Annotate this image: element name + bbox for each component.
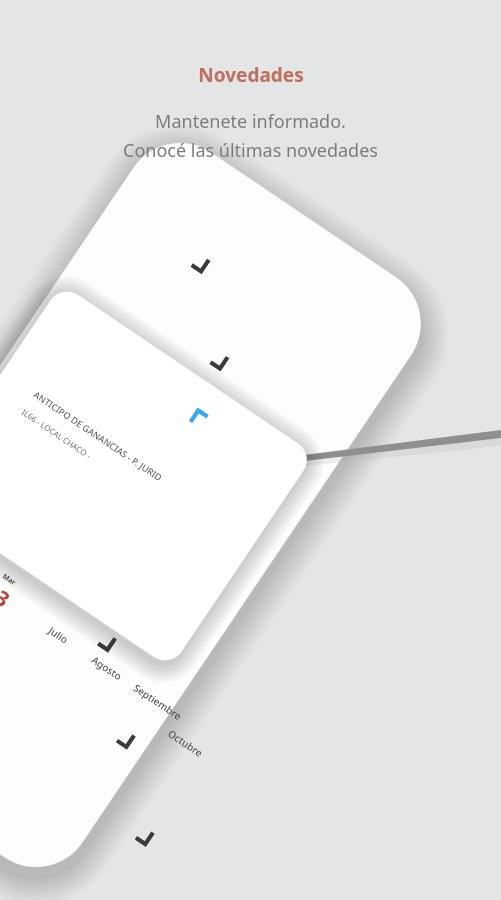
staticText: Agosto bbox=[89, 653, 125, 683]
button[interactable]: Septiembre bbox=[131, 680, 185, 723]
staticText: Septiembre bbox=[131, 680, 185, 723]
staticText: ANTICIPO DE GANANCIAS - P. JURID bbox=[32, 388, 165, 483]
staticText: Julio bbox=[46, 623, 71, 647]
staticText: Octubre bbox=[165, 726, 206, 760]
button[interactable]: ANTICIPO DE GANANCIAS - P. JURID bbox=[20, 388, 165, 501]
staticText: Novedades bbox=[198, 62, 304, 88]
button[interactable]: Julio bbox=[46, 623, 71, 647]
button[interactable]: Agosto bbox=[89, 653, 125, 683]
staticText: Mantenete informado. Conocé las últimas … bbox=[123, 109, 378, 162]
staticText: Mar bbox=[0, 572, 18, 588]
staticText: IL66 - LOCAL CHACO - bbox=[20, 406, 94, 461]
button[interactable]: Octubre bbox=[165, 726, 206, 760]
staticText: 13 bbox=[0, 577, 16, 615]
